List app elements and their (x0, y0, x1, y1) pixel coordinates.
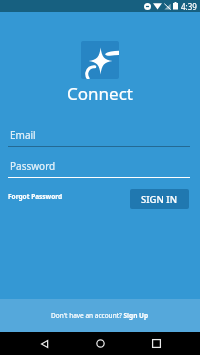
staticText: Forgot Password (8, 192, 63, 201)
staticText: Don't have an account? Sign Up (51, 311, 149, 320)
staticText: 4:39 (181, 1, 197, 12)
staticText: Connect (67, 82, 133, 105)
button[interactable]: Don't have an account? Sign Up (0, 299, 200, 332)
staticText: Password (10, 159, 56, 173)
button[interactable]: Recent apps (142, 332, 170, 355)
button[interactable]: Home (86, 332, 114, 355)
button[interactable]: Back (30, 332, 58, 355)
staticText: Email (10, 128, 36, 142)
button[interactable]: Forgot Password (6, 190, 65, 203)
staticText: SIGN IN (141, 193, 178, 206)
button[interactable]: SIGN IN (130, 189, 189, 209)
